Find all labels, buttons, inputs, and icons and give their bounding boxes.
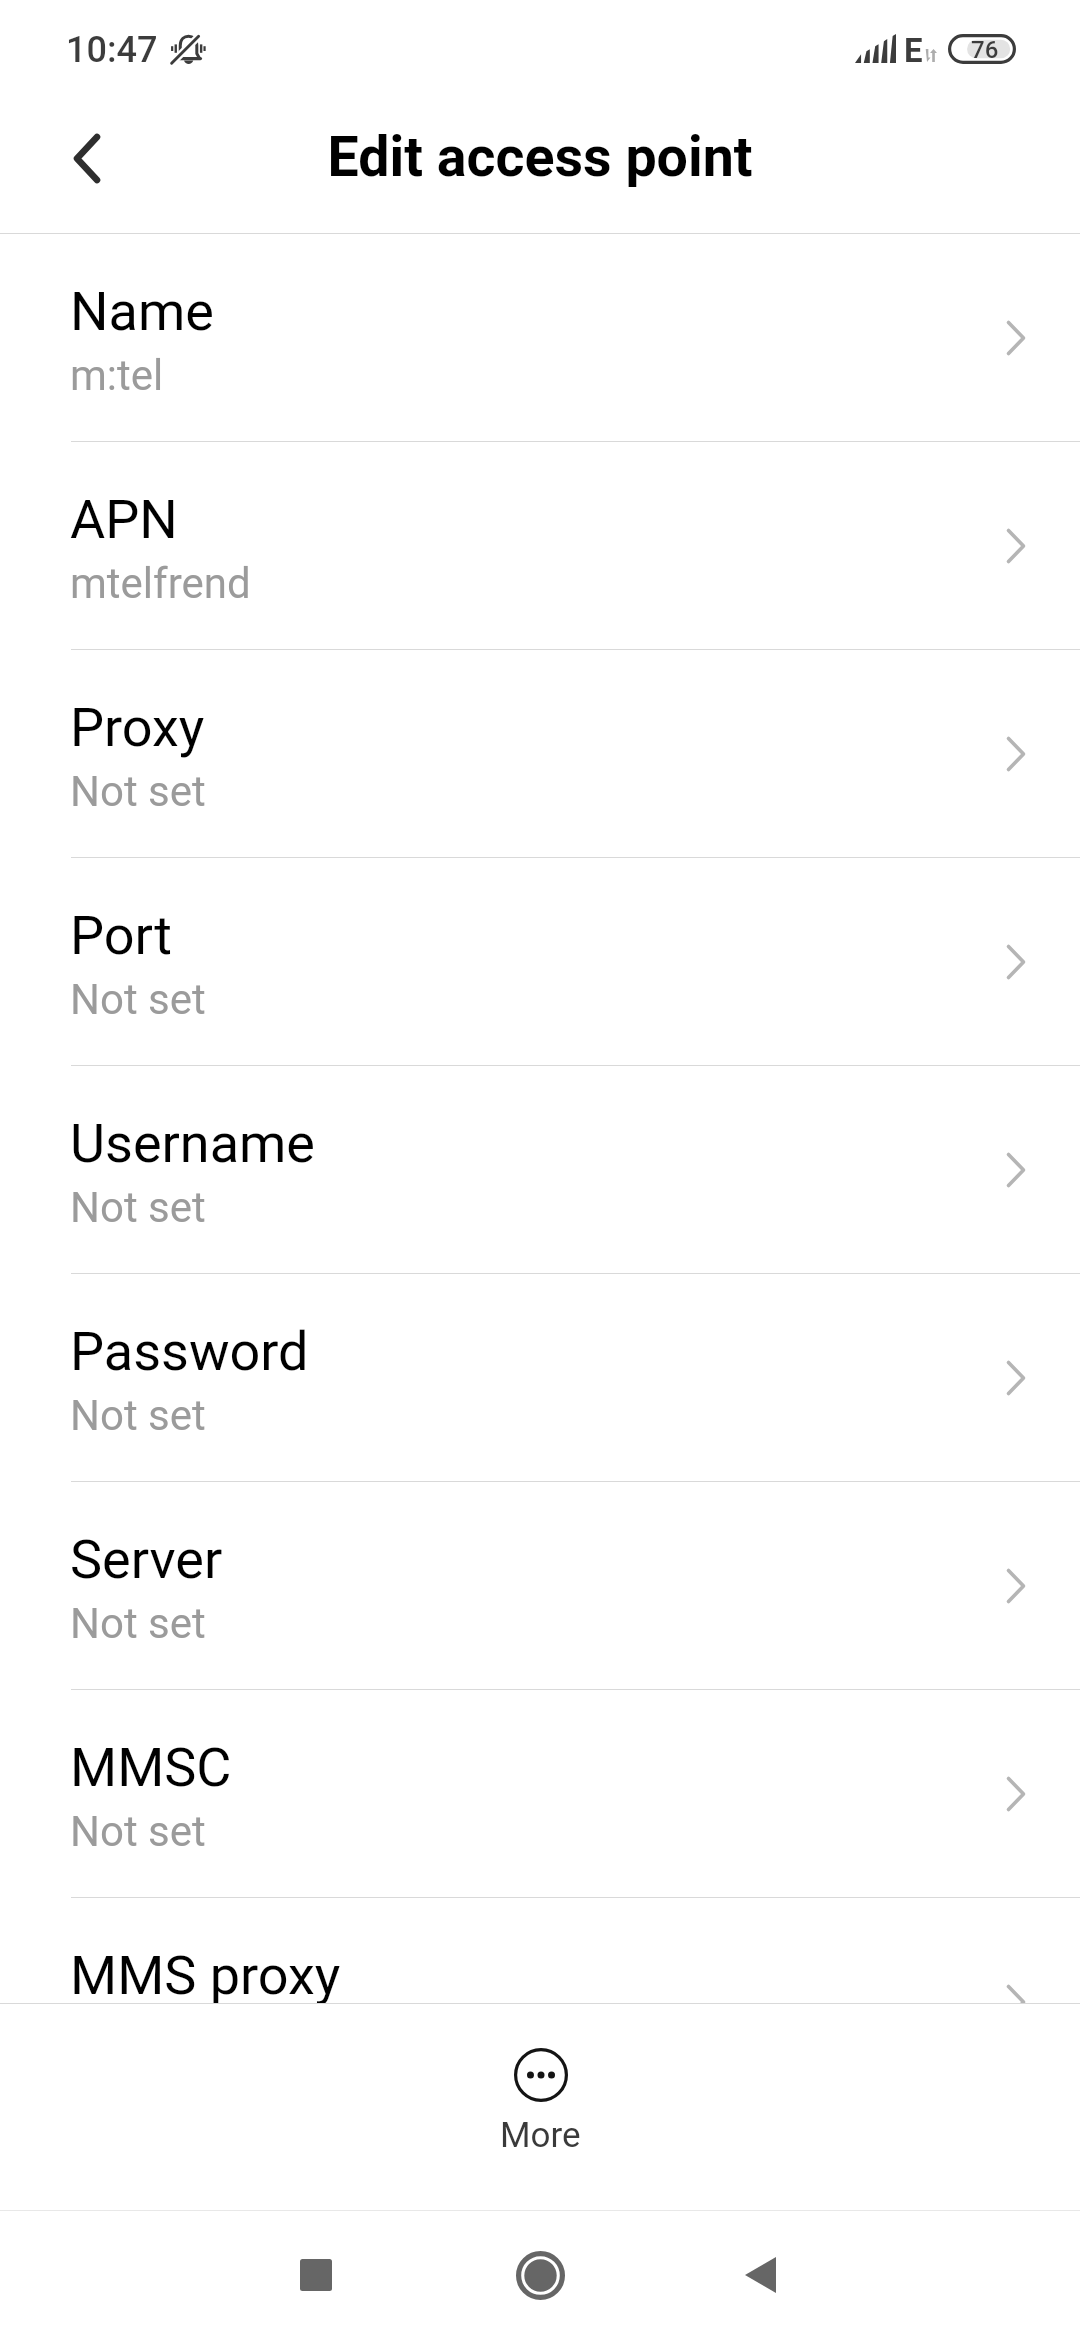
staticText: 76 — [971, 36, 999, 64]
button[interactable]: Server — [0, 1482, 1080, 1690]
button[interactable]: MMSC — [0, 1690, 1080, 1898]
staticText: More — [500, 2115, 581, 2156]
button[interactable]: MMS proxy — [0, 1898, 1080, 2003]
staticText: mtelfrend — [70, 559, 251, 608]
staticText: Not set — [70, 1599, 206, 1648]
staticText: Port — [70, 904, 172, 967]
button[interactable]: More — [500, 2048, 581, 2156]
staticText: Not set — [70, 767, 206, 816]
staticText: Not set — [70, 1391, 206, 1440]
staticText: m:tel — [70, 351, 164, 400]
staticText: APN — [70, 488, 178, 551]
staticText: Edit access point — [0, 125, 1080, 190]
button[interactable]: Recent apps — [256, 2215, 376, 2335]
staticText: Not set — [70, 975, 206, 1024]
button[interactable]: Name — [0, 234, 1080, 442]
button[interactable]: Username — [0, 1066, 1080, 1274]
button[interactable]: Back — [700, 2215, 820, 2335]
staticText: Server — [70, 1528, 223, 1591]
button[interactable]: Proxy — [0, 650, 1080, 858]
staticText: MMS proxy — [70, 1944, 341, 2003]
button[interactable]: Password — [0, 1274, 1080, 1482]
staticText: Name — [70, 280, 214, 343]
staticText: E — [904, 31, 923, 70]
staticText: MMSC — [70, 1736, 232, 1799]
staticText: Password — [70, 1320, 309, 1383]
staticText: 10:47 — [66, 29, 158, 71]
staticText: Not set — [70, 1183, 206, 1232]
button[interactable]: Home — [480, 2215, 600, 2335]
button[interactable]: Port — [0, 858, 1080, 1066]
button[interactable]: APN — [0, 442, 1080, 650]
staticText: Username — [70, 1112, 316, 1175]
button[interactable]: Back — [39, 101, 135, 215]
staticText: Proxy — [70, 696, 205, 759]
staticText: Not set — [70, 1807, 206, 1856]
